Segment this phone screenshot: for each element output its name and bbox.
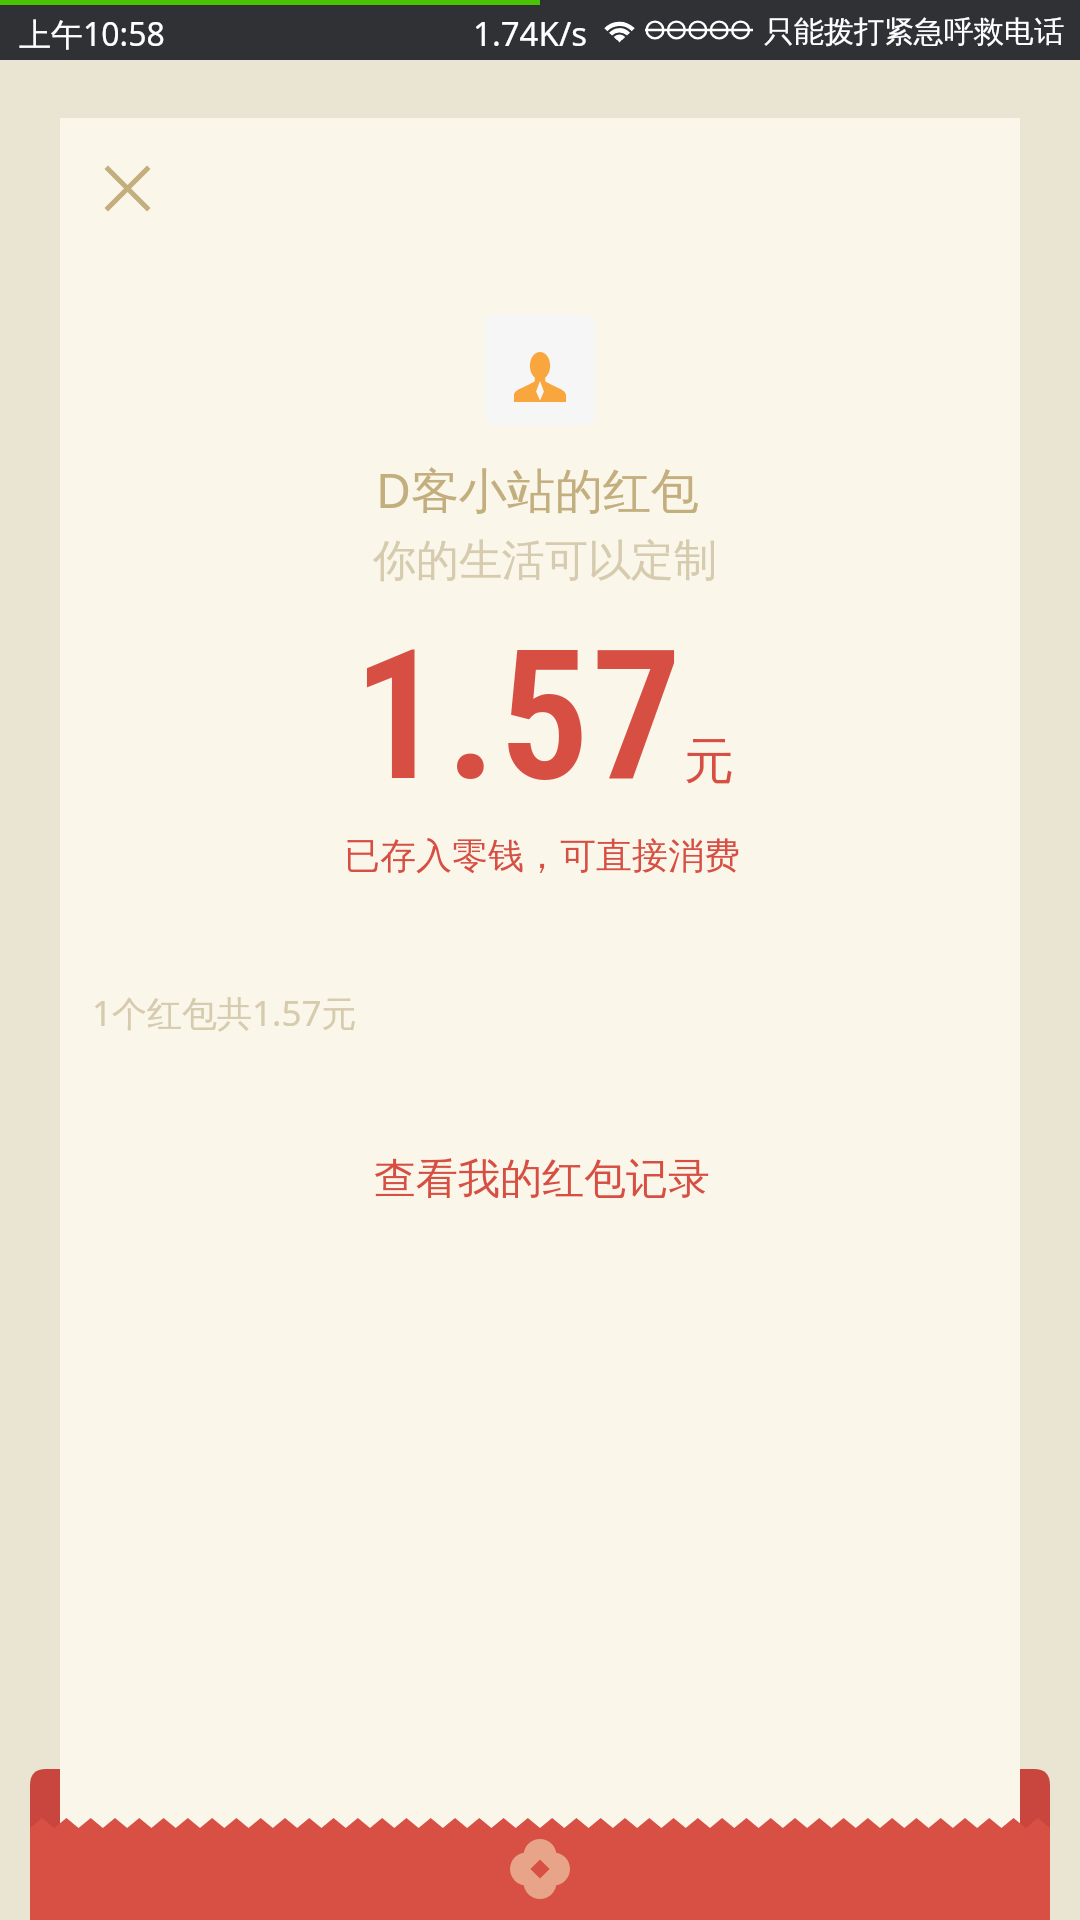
staticText: 查看我的红包记录 <box>374 1153 710 1206</box>
staticText: 已存入零钱，可直接消费 <box>344 833 740 878</box>
other: Wi-Fi <box>601 16 638 43</box>
staticText: 上午10:58 <box>19 12 165 56</box>
button[interactable]: Sender avatar <box>485 315 595 425</box>
staticText: 元 <box>684 730 734 793</box>
staticText: 1.57 <box>353 611 684 822</box>
staticText: 1个红包共1.57元 <box>92 989 357 1037</box>
other: No SIM service <box>643 19 755 41</box>
button[interactable]: 查看我的红包记录 <box>334 1131 750 1228</box>
staticText: 你的生活可以定制 <box>373 534 717 588</box>
staticText: 只能拨打紧急呼救电话 <box>764 13 1064 51</box>
button[interactable]: Close <box>82 143 172 233</box>
staticText: 1.74K/s <box>473 11 587 56</box>
staticText: D客小站的红包 <box>376 457 700 523</box>
